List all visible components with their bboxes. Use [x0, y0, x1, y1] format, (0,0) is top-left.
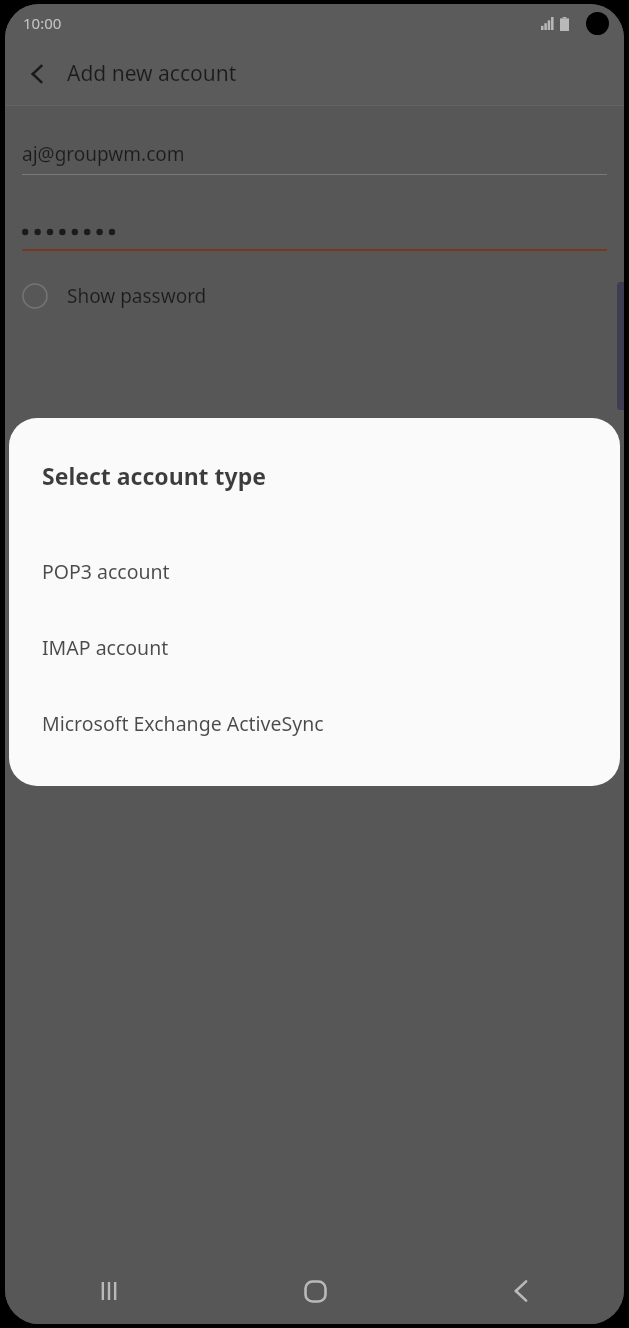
- button[interactable]: Show password: [5, 273, 624, 319]
- button[interactable]: POP3 account: [9, 533, 620, 609]
- button[interactable]: Back: [418, 1258, 624, 1324]
- button[interactable]: [22, 215, 607, 249]
- button[interactable]: Microsoft Exchange ActiveSync: [9, 685, 620, 761]
- staticText: Microsoft Exchange ActiveSync: [42, 710, 324, 737]
- button[interactable]: Home: [212, 1258, 418, 1324]
- staticText: POP3 account: [42, 558, 170, 585]
- staticText: 10:00: [23, 13, 62, 33]
- button[interactable]: aj@groupwm.com: [22, 134, 607, 174]
- button[interactable]: Navigate up: [15, 51, 61, 97]
- staticText: aj@groupwm.com: [22, 141, 185, 167]
- staticText: Select account type: [42, 460, 266, 491]
- staticText: IMAP account: [42, 634, 169, 661]
- staticText: Show password: [67, 283, 207, 309]
- staticText: Add new account: [67, 59, 237, 88]
- button[interactable]: IMAP account: [9, 609, 620, 685]
- button[interactable]: Recent apps: [5, 1258, 212, 1324]
